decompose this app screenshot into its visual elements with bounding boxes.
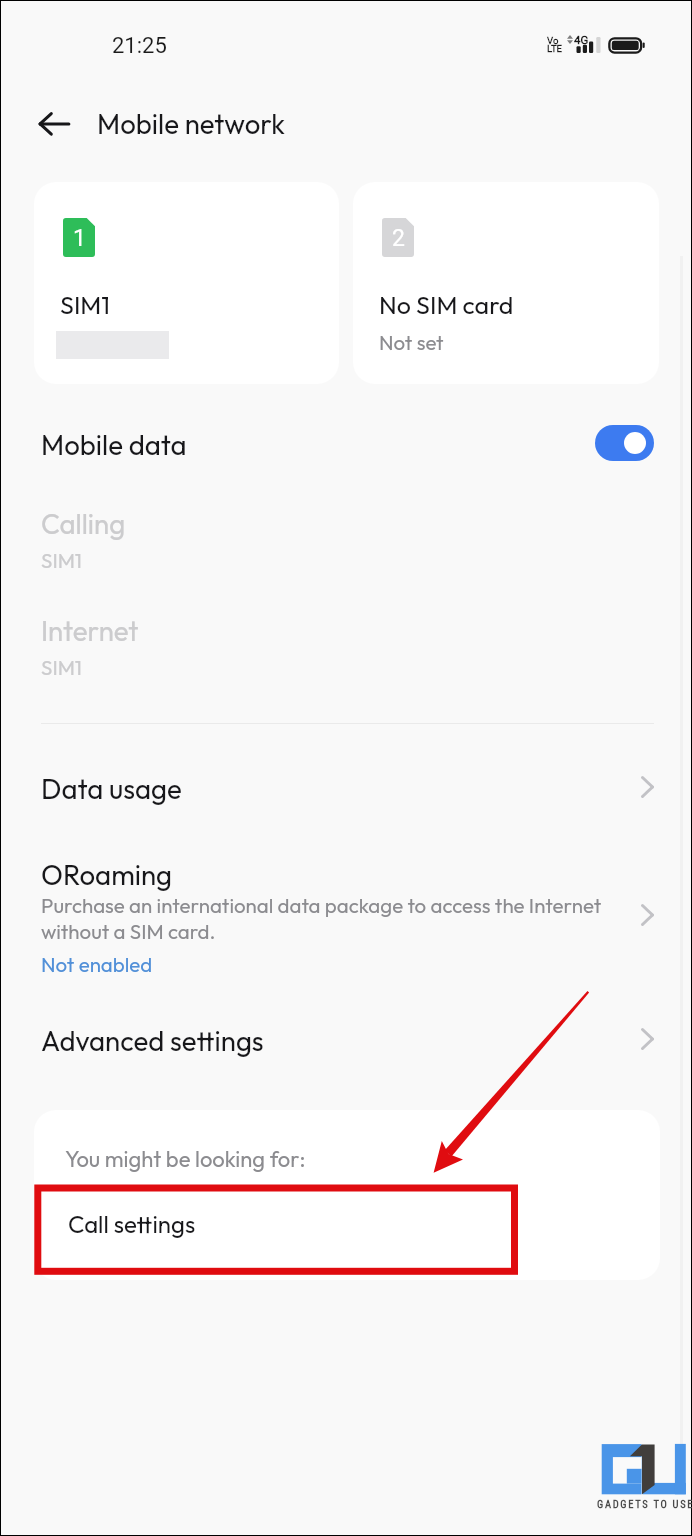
button[interactable]: Advanced settings [1, 1003, 691, 1075]
button[interactable]: Internet [1, 599, 691, 695]
staticText: SIM1 [60, 289, 110, 321]
staticText: LTE [547, 43, 563, 54]
staticText: SIM1 [41, 547, 82, 573]
button[interactable]: Mobile data [1, 411, 691, 481]
staticText: 2 [392, 225, 405, 252]
button[interactable]: Calling [1, 492, 691, 588]
staticText: GADGETS TO USE [597, 1498, 692, 1510]
staticText: Purchase an international data package t… [41, 892, 602, 918]
button[interactable]: Data usage [1, 751, 691, 823]
button[interactable]: 1 [34, 182, 339, 384]
staticText: 4G [574, 33, 589, 46]
staticText: Call settings [68, 1209, 196, 1239]
staticText: ORoaming [41, 857, 173, 892]
staticText: 21:25 [112, 33, 167, 59]
staticText: without a SIM card. [41, 918, 216, 944]
button[interactable]: You might be looking for: [34, 1110, 660, 1185]
staticText: Data usage [41, 771, 182, 806]
staticText: Internet [41, 613, 139, 648]
staticText: No SIM card [379, 289, 514, 321]
staticText: Not enabled [41, 951, 153, 977]
staticText: Mobile data [41, 427, 187, 462]
button[interactable]: Back [23, 102, 69, 148]
staticText: Not set [379, 329, 444, 355]
staticText: You might be looking for: [65, 1145, 306, 1173]
staticText: SIM1 [41, 654, 82, 680]
staticText: Mobile network [97, 106, 286, 141]
staticText: Vo [547, 35, 559, 46]
button[interactable]: Call settings [34, 1185, 660, 1280]
button[interactable]: 2 [353, 182, 659, 384]
staticText: Calling [41, 506, 126, 541]
button[interactable]: Mobile data toggle [595, 425, 654, 461]
staticText: Advanced settings [41, 1023, 264, 1058]
staticText: 1 [73, 225, 86, 252]
